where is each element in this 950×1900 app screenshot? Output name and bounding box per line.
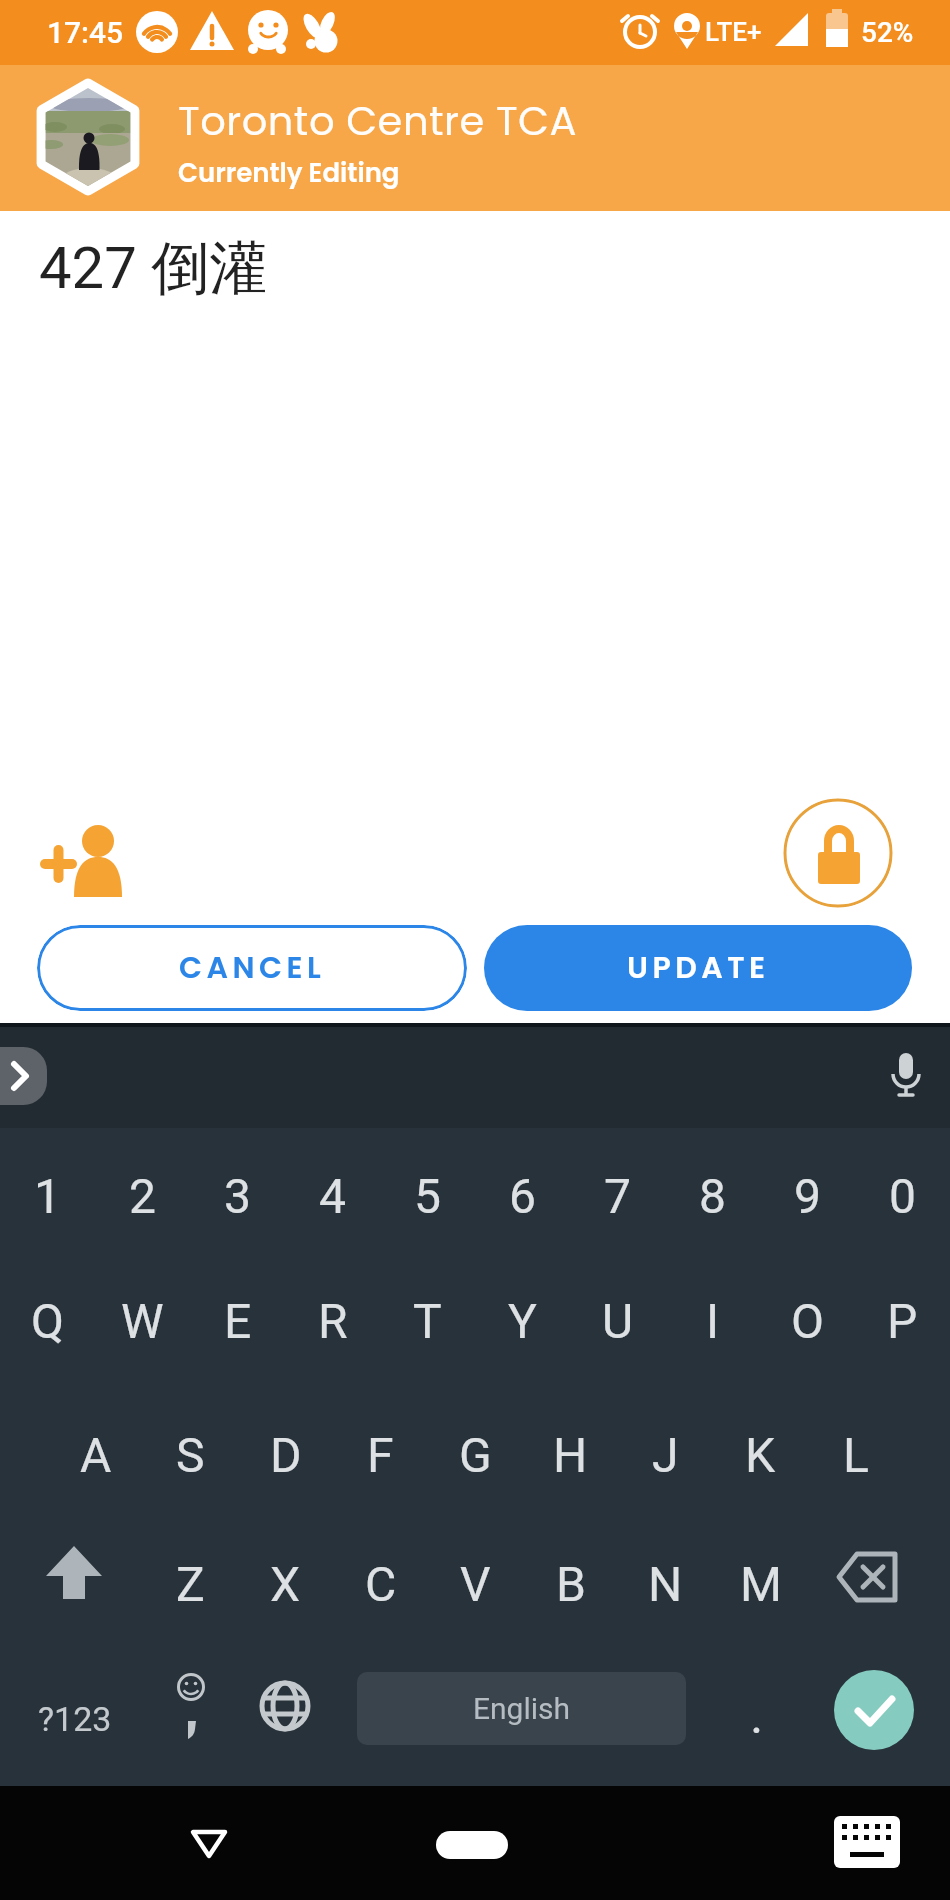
staticText: C bbox=[365, 1556, 397, 1612]
button[interactable]: X bbox=[238, 1518, 333, 1649]
button[interactable] bbox=[240, 1655, 330, 1783]
staticText: Currently Editing bbox=[178, 155, 400, 191]
staticText: H bbox=[553, 1427, 588, 1483]
staticText: 5 bbox=[414, 1168, 441, 1224]
button[interactable]: 6 bbox=[475, 1130, 570, 1261]
staticText: English bbox=[473, 1691, 571, 1726]
button[interactable]: Z bbox=[143, 1518, 238, 1649]
button[interactable]: P bbox=[855, 1255, 950, 1386]
button[interactable] bbox=[783, 798, 893, 908]
button[interactable]: E bbox=[190, 1255, 285, 1386]
button[interactable] bbox=[40, 819, 125, 897]
button[interactable]: 2 bbox=[95, 1130, 190, 1261]
staticText: D bbox=[270, 1427, 302, 1483]
button[interactable]: C bbox=[333, 1518, 428, 1649]
staticText: V bbox=[460, 1556, 491, 1612]
staticText: G bbox=[459, 1427, 492, 1483]
button[interactable]: N bbox=[618, 1518, 713, 1649]
staticText: S bbox=[176, 1427, 205, 1483]
button[interactable]: 5 bbox=[380, 1130, 475, 1261]
button[interactable]: 3 bbox=[190, 1130, 285, 1261]
button[interactable] bbox=[825, 1532, 920, 1632]
staticText: 427 倒灌 bbox=[39, 232, 268, 305]
staticText: 7 bbox=[604, 1168, 631, 1224]
staticText: Toronto Centre TCA bbox=[178, 93, 577, 149]
staticText: B bbox=[556, 1556, 586, 1612]
staticText: J bbox=[652, 1427, 679, 1483]
staticText: 17:45 bbox=[47, 15, 124, 50]
staticText: 2 bbox=[129, 1168, 156, 1224]
button[interactable]: CANCEL bbox=[37, 925, 467, 1011]
staticText: 8 bbox=[699, 1168, 726, 1224]
staticText: LTE+ bbox=[705, 17, 762, 47]
button[interactable]: 7 bbox=[570, 1130, 665, 1261]
button[interactable]: T bbox=[380, 1255, 475, 1386]
staticText: 6 bbox=[509, 1168, 536, 1224]
staticText: Z bbox=[176, 1556, 205, 1612]
button[interactable]: F bbox=[333, 1389, 428, 1520]
staticText: Q bbox=[31, 1293, 65, 1349]
staticText: Y bbox=[508, 1293, 537, 1349]
button[interactable]: ?123 bbox=[20, 1655, 130, 1783]
staticText: UPDATE bbox=[627, 947, 770, 989]
button[interactable] bbox=[882, 1051, 930, 1099]
button[interactable] bbox=[834, 1670, 914, 1750]
button[interactable]: G bbox=[428, 1389, 523, 1520]
button[interactable] bbox=[0, 1047, 47, 1105]
staticText: I bbox=[706, 1293, 720, 1349]
button[interactable]: 1 bbox=[0, 1130, 95, 1261]
staticText: 52% bbox=[861, 16, 914, 49]
button[interactable]: I bbox=[665, 1255, 760, 1386]
staticText: W bbox=[121, 1293, 164, 1349]
button[interactable] bbox=[26, 1532, 121, 1632]
button[interactable]: B bbox=[523, 1518, 618, 1649]
button[interactable]: K bbox=[713, 1389, 808, 1520]
staticText: CANCEL bbox=[179, 947, 326, 989]
staticText: U bbox=[602, 1293, 634, 1349]
button[interactable]: Q bbox=[0, 1255, 95, 1386]
staticText: K bbox=[745, 1427, 776, 1483]
staticText: O bbox=[791, 1293, 825, 1349]
button[interactable]: H bbox=[523, 1389, 618, 1520]
button[interactable]: W bbox=[95, 1255, 190, 1386]
staticText: T bbox=[413, 1293, 442, 1349]
staticText: L bbox=[843, 1427, 869, 1483]
button[interactable]: Y bbox=[475, 1255, 570, 1386]
button[interactable]: R bbox=[285, 1255, 380, 1386]
staticText: 9 bbox=[794, 1168, 821, 1224]
button[interactable]: A bbox=[48, 1389, 143, 1520]
staticText: E bbox=[224, 1293, 252, 1349]
button[interactable]: English bbox=[357, 1672, 686, 1745]
button[interactable] bbox=[150, 1655, 235, 1783]
button[interactable]: U bbox=[570, 1255, 665, 1386]
button[interactable]: S bbox=[143, 1389, 238, 1520]
button[interactable] bbox=[177, 1812, 241, 1876]
button[interactable] bbox=[830, 1810, 902, 1876]
button[interactable]: M bbox=[713, 1518, 808, 1649]
button[interactable] bbox=[436, 1831, 508, 1859]
staticText: . bbox=[751, 1696, 763, 1743]
button[interactable]: . bbox=[712, 1655, 802, 1783]
button[interactable]: L bbox=[808, 1389, 903, 1520]
button[interactable]: 9 bbox=[760, 1130, 855, 1261]
button[interactable]: 8 bbox=[665, 1130, 760, 1261]
staticText: P bbox=[887, 1293, 918, 1349]
staticText: 0 bbox=[889, 1168, 916, 1224]
button[interactable]: J bbox=[618, 1389, 713, 1520]
staticText: 4 bbox=[319, 1168, 346, 1224]
button[interactable]: 4 bbox=[285, 1130, 380, 1261]
staticText: A bbox=[80, 1427, 112, 1483]
staticText: N bbox=[648, 1556, 683, 1612]
button[interactable]: UPDATE bbox=[484, 925, 912, 1011]
staticText: X bbox=[270, 1556, 301, 1612]
staticText: F bbox=[367, 1427, 394, 1483]
staticText: M bbox=[740, 1556, 782, 1612]
staticText: R bbox=[318, 1293, 348, 1349]
button[interactable]: O bbox=[760, 1255, 855, 1386]
staticText: 1 bbox=[34, 1168, 61, 1224]
button[interactable]: 0 bbox=[855, 1130, 950, 1261]
button[interactable]: V bbox=[428, 1518, 523, 1649]
staticText: ?123 bbox=[38, 1699, 112, 1739]
button[interactable]: D bbox=[238, 1389, 333, 1520]
staticText: 3 bbox=[224, 1168, 251, 1224]
